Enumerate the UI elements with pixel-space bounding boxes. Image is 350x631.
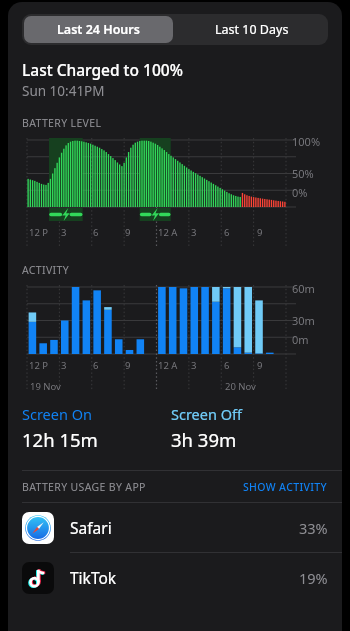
staticText: 12h 15m [22, 427, 98, 452]
staticText: 9 [125, 359, 131, 372]
staticText: 6 [93, 226, 99, 239]
staticText: BATTERY USAGE BY APP [22, 480, 146, 494]
staticText: Screen Off [171, 404, 243, 424]
staticText: 3 [61, 359, 67, 372]
button[interactable]: SHOW ACTIVITY [243, 480, 328, 494]
button[interactable]: TikTok [8, 553, 342, 602]
staticText: 9 [125, 226, 131, 239]
staticText: 6 [224, 226, 230, 239]
staticText: 12 P [29, 359, 49, 372]
staticText: Screen On [22, 404, 92, 424]
staticText: 33% [299, 518, 328, 538]
staticText: Last 10 Days [215, 21, 289, 38]
staticText: TikTok [70, 567, 117, 588]
staticText: 60m [292, 281, 315, 296]
staticText: 3h 39m [171, 427, 237, 452]
staticText: SHOW ACTIVITY [243, 480, 328, 494]
staticText: 12 P [29, 226, 49, 239]
button[interactable]: Last 10 Days [175, 14, 328, 45]
staticText: 100% [292, 134, 321, 149]
button[interactable]: Last 24 Hours [24, 16, 173, 43]
staticText: 3 [61, 226, 67, 239]
staticText: 19 Nov [30, 380, 61, 393]
staticText: 0m [292, 332, 309, 347]
staticText: 30m [292, 313, 315, 328]
staticText: BATTERY LEVEL [22, 116, 102, 130]
staticText: 9 [257, 226, 263, 239]
staticText: ACTIVITY [22, 263, 69, 277]
staticText: 50% [292, 166, 314, 181]
staticText: 19% [299, 568, 328, 588]
staticText: 3 [191, 226, 197, 239]
staticText: 0% [292, 185, 308, 200]
staticText: 12 A [158, 359, 178, 372]
staticText: Safari [70, 517, 112, 538]
staticText: 3 [191, 359, 197, 372]
staticText: 12 A [158, 226, 178, 239]
button[interactable]: Safari [8, 503, 342, 552]
staticText: 20 Nov [225, 380, 256, 393]
staticText: Sun 10:41PM [22, 82, 105, 100]
staticText: Last 24 Hours [57, 21, 140, 38]
staticText: 6 [93, 359, 99, 372]
staticText: Last Charged to 100% [22, 59, 183, 80]
staticText: 9 [257, 359, 263, 372]
staticText: 6 [224, 359, 230, 372]
